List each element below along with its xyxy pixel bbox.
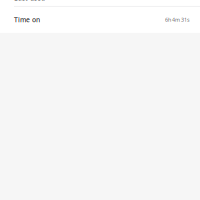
- button[interactable]: Last used: [0, 0, 200, 6]
- staticText: Time on: [14, 15, 40, 24]
- staticText: Last used: [14, 0, 45, 2]
- staticText: 6h 4m 31s: [165, 16, 190, 23]
- button[interactable]: Time on: [0, 7, 200, 32]
